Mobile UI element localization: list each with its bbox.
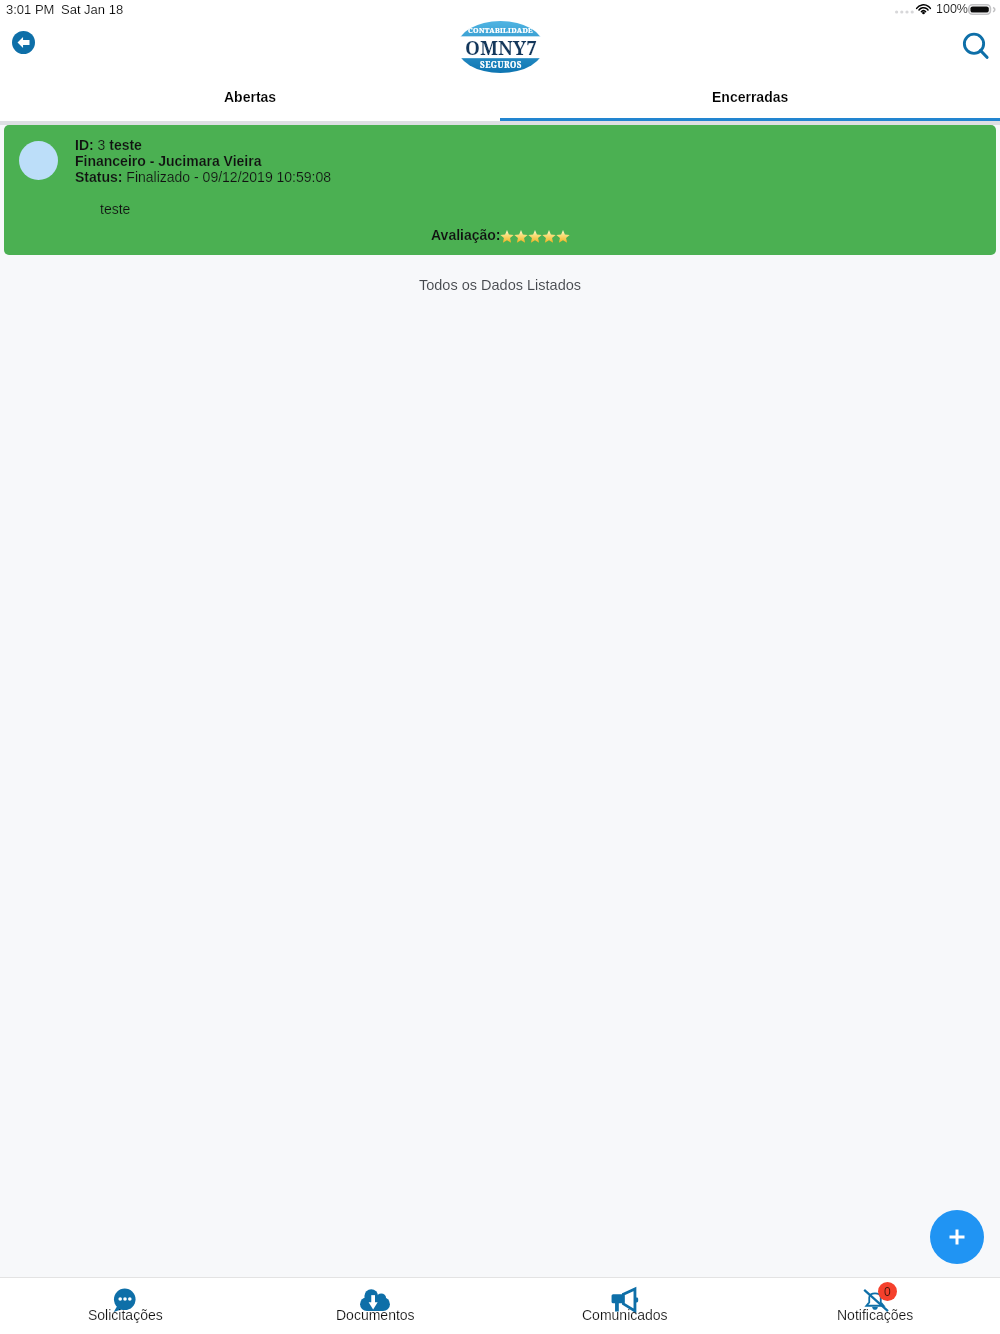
staticText: 100% (936, 2, 968, 16)
button[interactable]: Solicitações (0, 1278, 250, 1334)
button[interactable]: Voltar (12, 31, 35, 54)
button[interactable]: Encerradas (500, 79, 1000, 118)
staticText: Notificações (837, 1307, 914, 1323)
staticText: Avaliação: (431, 227, 501, 243)
staticText: 0 (884, 1285, 891, 1298)
staticText: Sat Jan 18 (61, 2, 124, 17)
button[interactable]: Adicionar (930, 1210, 984, 1264)
button[interactable]: Comunicados (500, 1278, 750, 1334)
button[interactable]: Documentos (250, 1278, 500, 1334)
staticText: SEGUROS (480, 59, 522, 70)
staticText: ID: 3 teste (75, 137, 142, 153)
staticText: Abertas (224, 89, 277, 105)
staticText: Todos os Dados Listados (0, 277, 1000, 293)
button[interactable]: 0 (750, 1278, 1000, 1334)
staticText: Encerradas (712, 89, 789, 105)
button[interactable]: Abertas (0, 79, 500, 118)
staticText: 3:01 PM (6, 2, 55, 17)
staticText: Status: Finalizado - 09/12/2019 10:59:08 (75, 169, 332, 185)
button[interactable]: Buscar (960, 30, 992, 62)
staticText: OMNY7 (465, 35, 537, 61)
button[interactable]: ID: 3 teste (4, 125, 996, 255)
staticText: Solicitações (88, 1307, 163, 1323)
staticText: Financeiro - Jucimara Vieira (75, 153, 262, 169)
staticText: CONTABILIDADE (468, 26, 534, 36)
staticText: Comunicados (582, 1307, 668, 1323)
staticText: Documentos (336, 1307, 415, 1323)
staticText: teste (100, 201, 131, 217)
